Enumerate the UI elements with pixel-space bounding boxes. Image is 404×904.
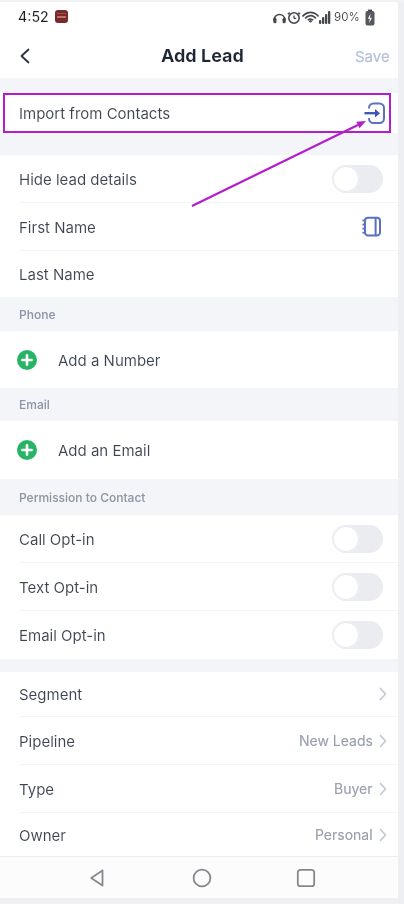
- staticText: Permission to Contact: [19, 490, 146, 505]
- staticText: New Leads: [299, 732, 373, 749]
- staticText: Phone: [19, 307, 56, 322]
- staticText: Email Opt-in: [19, 626, 106, 644]
- staticText: Pipeline: [19, 732, 76, 750]
- staticText: Personal: [315, 826, 373, 843]
- button[interactable]: Last Name: [0, 251, 404, 297]
- staticText: Call Opt-in: [19, 530, 95, 548]
- staticText: Text Opt-in: [19, 578, 99, 596]
- button[interactable]: First Name: [0, 203, 404, 250]
- button[interactable]: Pipeline: [0, 717, 404, 764]
- staticText: Owner: [19, 826, 66, 844]
- staticText: Buyer: [334, 780, 373, 797]
- staticText: 4:52: [18, 8, 49, 25]
- button[interactable]: Import from Contacts: [0, 93, 404, 133]
- staticText: First Name: [19, 218, 96, 236]
- button[interactable]: [284, 856, 328, 899]
- button[interactable]: Text Opt-in: [0, 563, 404, 610]
- staticText: Add an Email: [58, 441, 151, 459]
- staticText: Add Lead: [161, 45, 244, 67]
- staticText: Email: [19, 397, 50, 412]
- button[interactable]: Call Opt-in: [0, 515, 404, 562]
- staticText: Hide lead details: [19, 170, 137, 188]
- staticText: 90%: [334, 10, 360, 24]
- staticText: Save: [355, 47, 390, 65]
- button[interactable]: Add an Email: [0, 421, 404, 479]
- button[interactable]: Hide lead details: [0, 155, 404, 202]
- staticText: Import from Contacts: [19, 104, 171, 122]
- staticText: Type: [19, 780, 55, 798]
- button[interactable]: Owner: [0, 813, 404, 856]
- button[interactable]: Save: [355, 47, 390, 65]
- staticText: Last Name: [19, 265, 95, 283]
- button[interactable]: Email Opt-in: [0, 611, 404, 659]
- button[interactable]: Segment: [0, 672, 404, 716]
- button[interactable]: [76, 856, 120, 899]
- button[interactable]: Add a Number: [0, 331, 404, 388]
- staticText: Add a Number: [58, 351, 161, 369]
- button[interactable]: [17, 48, 33, 64]
- staticText: Segment: [19, 685, 83, 703]
- button[interactable]: Type: [0, 765, 404, 812]
- button[interactable]: [180, 856, 224, 899]
